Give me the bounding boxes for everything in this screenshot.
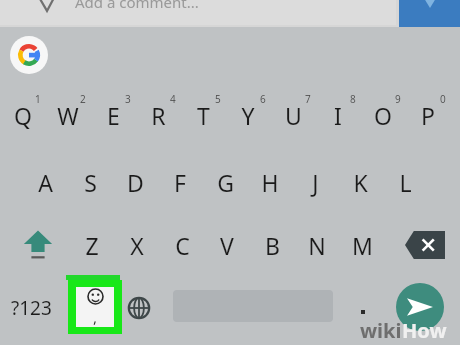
button[interactable]: L [383, 164, 427, 200]
button[interactable]: Google [10, 36, 48, 74]
staticText: A [38, 167, 53, 198]
staticText: , [93, 307, 98, 327]
button[interactable]: Change keyboard language [122, 290, 156, 326]
button[interactable]: ?123 [2, 290, 60, 326]
button[interactable]: J [293, 164, 337, 200]
staticText: I [334, 100, 342, 131]
button[interactable]: Z [70, 227, 114, 263]
staticText: M [352, 230, 373, 261]
button[interactable]: Send comment [399, 0, 460, 27]
staticText: 0 [440, 92, 446, 106]
button[interactable]: Add a comment... [0, 0, 396, 25]
button[interactable]: W [46, 97, 90, 133]
staticText: V [220, 230, 234, 261]
staticText: How [402, 317, 447, 344]
staticText: wiki [360, 317, 402, 344]
staticText: 5 [215, 92, 221, 106]
staticText: 1 [35, 92, 41, 106]
button[interactable]: N [295, 227, 339, 263]
staticText: Q [14, 100, 32, 131]
staticText: Y [241, 100, 255, 131]
button[interactable]: G [203, 164, 247, 200]
staticText: ?123 [11, 295, 52, 321]
staticText: U [285, 100, 302, 131]
staticText: J [312, 167, 319, 198]
staticText: X [130, 230, 144, 261]
button[interactable]: Emoji [68, 280, 122, 334]
staticText: Add a comment... [75, 0, 199, 12]
button[interactable]: V [205, 227, 249, 263]
staticText: P [421, 100, 435, 131]
staticText: B [265, 230, 280, 261]
button[interactable]: O [361, 97, 405, 133]
button[interactable]: D [113, 164, 157, 200]
button[interactable]: T [181, 97, 225, 133]
button[interactable]: Send [396, 283, 444, 331]
button[interactable] [346, 290, 380, 324]
staticText: 6 [260, 92, 266, 106]
staticText: S [84, 167, 97, 198]
button[interactable]: M [340, 227, 384, 263]
button[interactable]: S [68, 164, 112, 200]
button[interactable]: K [338, 164, 382, 200]
button[interactable]: F [158, 164, 202, 200]
button[interactable]: I [316, 97, 360, 133]
button[interactable]: E [91, 97, 135, 133]
staticText: 2 [80, 92, 86, 106]
staticText: 9 [395, 92, 401, 106]
button[interactable]: A [23, 164, 67, 200]
button[interactable]: Y [226, 97, 270, 133]
staticText: 4 [170, 92, 176, 106]
staticText: W [57, 100, 79, 131]
button[interactable]: C [160, 227, 204, 263]
button[interactable]: Q [1, 97, 45, 133]
staticText: G [217, 167, 234, 198]
staticText: Z [85, 230, 99, 261]
staticText: T [197, 100, 210, 131]
other: Verified [36, 0, 58, 12]
staticText: 8 [350, 92, 356, 106]
button[interactable]: Shift [14, 222, 62, 268]
staticText: H [261, 167, 279, 198]
button[interactable]: X [115, 227, 159, 263]
staticText: 7 [305, 92, 311, 106]
staticText: K [353, 167, 368, 198]
button[interactable]: U [271, 97, 315, 133]
staticText: C [175, 230, 190, 261]
staticText: E [107, 100, 120, 131]
staticText: R [151, 100, 166, 131]
staticText: 3 [125, 92, 131, 106]
staticText: D [127, 167, 144, 198]
button[interactable]: R [136, 97, 180, 133]
button[interactable]: P [406, 97, 450, 133]
staticText: O [374, 100, 392, 131]
button[interactable]: H [248, 164, 292, 200]
staticText: L [399, 167, 412, 198]
button[interactable]: B [250, 227, 294, 263]
staticText: N [308, 230, 326, 261]
staticText: F [174, 167, 186, 198]
button[interactable]: Backspace [403, 226, 447, 264]
